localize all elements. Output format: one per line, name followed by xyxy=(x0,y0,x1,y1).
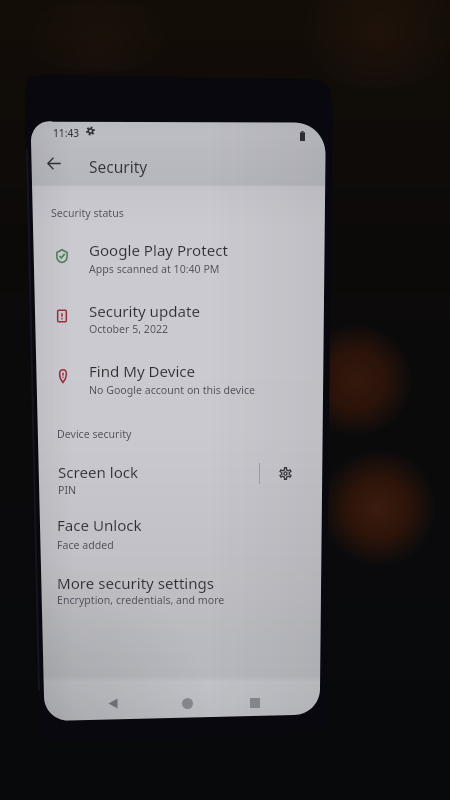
staticText: Screen lock xyxy=(58,462,139,483)
staticText: PIN xyxy=(58,483,77,497)
button[interactable]: Google Play Protect xyxy=(40,230,310,278)
staticText: More security settings xyxy=(57,573,215,594)
staticText: Encryption, credentials, and more xyxy=(57,593,225,607)
button[interactable]: Face Unlock xyxy=(39,504,309,552)
button[interactable]: Find My Device xyxy=(41,351,311,399)
button[interactable]: Back xyxy=(100,690,126,716)
staticText: Face added xyxy=(57,538,114,552)
staticText: 11:43 xyxy=(53,126,80,140)
staticText: Security xyxy=(89,156,148,177)
button[interactable]: Screen lock settings xyxy=(272,460,298,486)
staticText: Apps scanned at 10:40 PM xyxy=(89,262,220,276)
button[interactable]: Recents xyxy=(242,690,268,716)
staticText: No Google account on this device xyxy=(89,383,256,397)
staticText: Face Unlock xyxy=(57,515,142,536)
staticText: Security status xyxy=(51,206,124,220)
staticText: Device security xyxy=(57,427,132,441)
button[interactable]: Home xyxy=(174,690,200,716)
button[interactable]: Security update xyxy=(40,291,310,339)
staticText: Find My Device xyxy=(89,361,196,382)
button[interactable]: More security settings xyxy=(39,562,309,610)
staticText: Security update xyxy=(89,301,200,322)
button[interactable]: Screen lock xyxy=(40,451,262,499)
staticText: October 5, 2022 xyxy=(89,322,169,336)
button[interactable]: Back xyxy=(38,148,69,179)
staticText: Google Play Protect xyxy=(89,240,228,261)
